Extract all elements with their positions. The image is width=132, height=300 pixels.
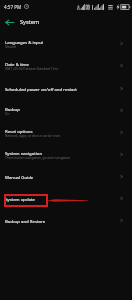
button[interactable]: Manual Guide bbox=[0, 165, 132, 187]
staticText: Network, apps, or device can be reset bbox=[5, 134, 61, 138]
staticText: GMT +05:00 Pakistan Standard Time bbox=[5, 67, 59, 71]
button[interactable]: System update bbox=[0, 187, 132, 209]
button[interactable]: Backup bbox=[0, 99, 132, 121]
staticText: Three-button navigation, gesture navigat… bbox=[5, 156, 71, 160]
staticText: Date & time bbox=[5, 61, 30, 67]
staticText: System navigation bbox=[5, 150, 43, 156]
staticText: On bbox=[5, 112, 10, 116]
button[interactable]: Back bbox=[2, 15, 17, 30]
staticText: Reset options bbox=[5, 128, 33, 134]
staticText: Gboard bbox=[5, 45, 17, 49]
button[interactable]: Reset options bbox=[0, 121, 132, 143]
button[interactable]: Languages & input bbox=[0, 32, 132, 54]
button[interactable]: Scheduled power on/off and restart bbox=[0, 77, 132, 99]
button[interactable]: Date & time bbox=[0, 54, 132, 76]
button[interactable]: Backup and Restore bbox=[0, 209, 132, 231]
staticText: System bbox=[20, 18, 40, 26]
staticText: System update bbox=[5, 196, 36, 202]
staticText: Backup bbox=[5, 106, 20, 112]
staticText: 4:57 PM bbox=[4, 4, 22, 10]
staticText: Backup and Restore bbox=[5, 218, 46, 224]
staticText: Scheduled power on/off and restart bbox=[5, 86, 77, 92]
staticText: Manual Guide bbox=[5, 174, 34, 180]
button[interactable]: System navigation bbox=[0, 143, 132, 165]
staticText: Languages & input bbox=[5, 39, 44, 45]
